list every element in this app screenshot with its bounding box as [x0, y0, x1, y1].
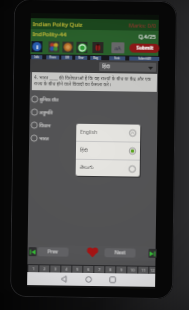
staticText: Submit All: [138, 57, 151, 61]
staticText: Shar: [78, 56, 84, 60]
staticText: తెలుగు: [80, 165, 94, 172]
button[interactable]: [109, 276, 116, 283]
staticText: विधान: [39, 122, 51, 129]
button[interactable]: i: [31, 41, 42, 52]
staticText: Prev: [47, 248, 59, 256]
staticText: Info: [34, 55, 39, 59]
button[interactable]: लहुमति: [31, 108, 92, 117]
staticText: 10: [130, 267, 135, 273]
staticText: 2: [43, 266, 46, 271]
staticText: बुनिक वोट: [40, 96, 59, 103]
staticText: 9: [120, 267, 123, 272]
staticText: 11: [141, 268, 146, 273]
staticText: 3: [54, 266, 57, 271]
staticText: 1: [32, 266, 35, 271]
staticText: Indian Polity Quiz: [33, 20, 83, 29]
button[interactable]: [28, 247, 37, 256]
staticText: 4: [65, 267, 68, 272]
staticText: 12: [150, 268, 155, 273]
button[interactable]: 12: [149, 267, 155, 274]
staticText: 6: [87, 267, 90, 272]
button[interactable]: 4: [61, 266, 71, 273]
button[interactable]: [86, 247, 99, 258]
button[interactable]: 10: [127, 266, 137, 274]
button[interactable]: 7: [94, 266, 104, 273]
staticText: हिंदी: [102, 63, 110, 70]
staticText: 7: [98, 267, 101, 272]
button[interactable]: [148, 249, 157, 258]
staticText: 5: [76, 267, 79, 272]
button[interactable]: विधान: [31, 121, 91, 130]
button[interactable]: Next: [104, 248, 136, 258]
staticText: English: [80, 129, 98, 136]
staticText: 8: [109, 267, 112, 272]
staticText: Submit: [136, 45, 153, 52]
button[interactable]: हिंदी: [80, 142, 136, 160]
button[interactable]: aA: [111, 42, 124, 53]
button[interactable]: 3: [50, 265, 60, 272]
button[interactable]: Submit: [129, 43, 159, 53]
staticText: Marks: 0/0: [129, 21, 157, 29]
staticText: भारत: [39, 135, 49, 142]
button[interactable]: Prev: [37, 247, 69, 257]
button[interactable]: बुनिक वोट: [32, 95, 92, 104]
staticText: Font: [114, 56, 120, 60]
button[interactable]: 11: [138, 267, 148, 274]
button[interactable]: 8: [105, 266, 115, 273]
staticText: Bug: [93, 56, 98, 60]
staticText: Q.4/25: [138, 33, 157, 40]
button[interactable]: [76, 42, 87, 53]
button[interactable]: [62, 42, 73, 53]
staticText: IndPolity-44: [32, 30, 67, 39]
staticText: राज्य के बीच होने वाले विवादों का फैसला …: [34, 80, 111, 87]
button[interactable]: [92, 42, 103, 53]
button[interactable]: తెలుగు: [80, 160, 136, 177]
staticText: Off: [65, 56, 69, 60]
button[interactable]: [60, 275, 67, 283]
button[interactable]: भारत: [31, 134, 91, 143]
button[interactable]: [48, 41, 59, 53]
staticText: i: [36, 43, 38, 51]
button[interactable]: [85, 276, 92, 283]
button[interactable]: 5: [72, 266, 82, 273]
staticText: लहुमति: [39, 109, 54, 116]
button[interactable]: English: [80, 124, 136, 142]
staticText: aA: [114, 44, 121, 51]
button[interactable]: 1: [28, 265, 38, 272]
button[interactable]: 2: [39, 265, 49, 272]
staticText: हिंदी: [80, 147, 88, 154]
button[interactable]: हिंदी: [102, 62, 153, 72]
staticText: 4. भारत ____ की विशेषताओं है कि वह राज्य…: [34, 74, 152, 82]
staticText: Them: [49, 55, 56, 59]
button[interactable]: 6: [83, 266, 93, 273]
staticText: Next: [114, 249, 126, 256]
button[interactable]: 9: [116, 266, 126, 273]
